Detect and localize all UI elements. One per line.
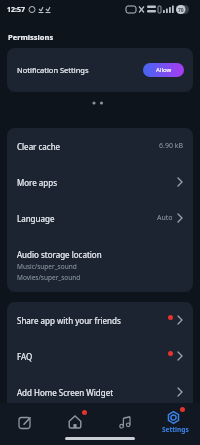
button[interactable] <box>0 403 50 445</box>
staticText: Settings <box>162 425 189 434</box>
button[interactable]: Add Home Screen Widget <box>7 374 193 410</box>
button[interactable]: FAQ <box>7 338 193 374</box>
button[interactable]: Clear cache <box>7 128 193 164</box>
button[interactable] <box>100 403 150 445</box>
staticText: 12:57 <box>7 5 25 15</box>
staticText: Notification Settings <box>17 65 89 75</box>
button[interactable]: Share app with your friends <box>7 302 193 338</box>
staticText: Auto <box>157 213 173 223</box>
staticText: Permissions <box>8 32 54 42</box>
staticText: More apps <box>17 177 57 188</box>
staticText: Audio storage location <box>17 249 102 260</box>
staticText: Language <box>17 213 55 224</box>
button[interactable]: Language <box>7 200 193 236</box>
button[interactable]: Notification Settings <box>7 48 193 92</box>
button[interactable]: More apps <box>7 164 193 200</box>
staticText: 6.90 kB <box>159 141 183 151</box>
staticText: Share app with your friends <box>17 315 121 326</box>
staticText: FAQ <box>17 351 33 362</box>
button[interactable] <box>50 403 100 445</box>
staticText: Allow <box>156 66 172 74</box>
staticText: 70 <box>178 7 184 14</box>
staticText: Add Home Screen Widget <box>17 387 114 398</box>
staticText: Clear cache <box>17 141 61 152</box>
staticText: Music/super_sound <box>17 262 77 271</box>
button[interactable]: Audio storage location <box>7 236 193 292</box>
button[interactable]: Settings <box>150 403 200 445</box>
button[interactable]: Allow <box>143 63 184 77</box>
staticText: Movies/super_sound <box>17 273 81 282</box>
